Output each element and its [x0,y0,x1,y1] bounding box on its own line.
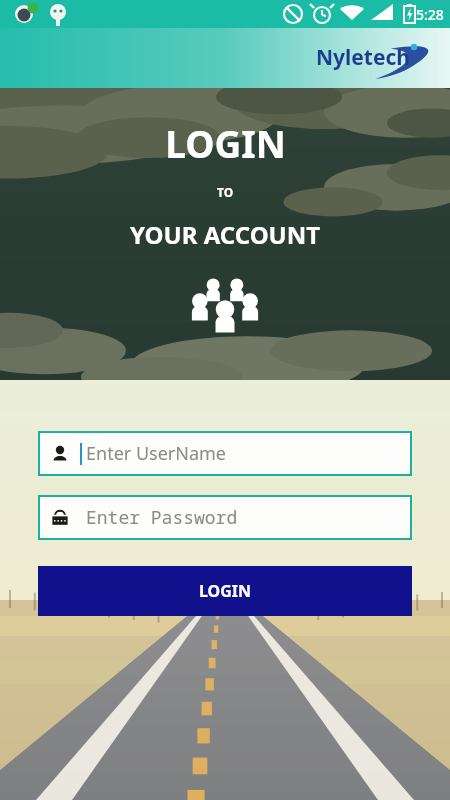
staticText: Enter Password [86,505,238,530]
staticText: LOGIN [199,580,252,602]
button[interactable]: Enter UserName [38,431,412,476]
staticText: TO [217,184,234,200]
button[interactable]: LOGIN [38,566,412,616]
staticText: Enter UserName [86,441,227,466]
staticText: LOGIN [165,118,286,168]
staticText: 5:28 [416,5,444,24]
staticText: Nyletech [316,43,410,72]
button[interactable]: Enter Password [38,495,412,540]
button[interactable]: Nyletech logo [310,35,440,81]
staticText: YOUR ACCOUNT [130,218,321,251]
